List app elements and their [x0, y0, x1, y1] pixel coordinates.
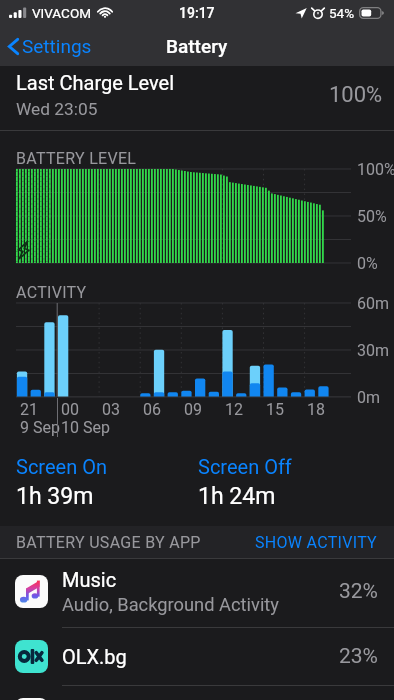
- staticText: 23%: [339, 644, 378, 669]
- other: Location: [295, 7, 307, 19]
- staticText: 0%: [357, 254, 378, 273]
- staticText: 1h 39m: [16, 483, 94, 510]
- button[interactable]: Last Charge Level: [0, 0, 394, 130]
- staticText: 09: [184, 400, 202, 419]
- staticText: OLX.bg: [62, 645, 127, 668]
- staticText: Music: [62, 568, 117, 591]
- staticText: Settings: [22, 35, 92, 57]
- staticText: 30m: [357, 341, 390, 360]
- staticText: 06: [143, 400, 161, 419]
- button[interactable]: Settings: [0, 26, 100, 66]
- staticText: 15: [266, 400, 284, 419]
- staticText: Wed 23:05: [16, 99, 98, 119]
- staticText: 10 Sep: [61, 418, 110, 437]
- staticText: 03: [102, 400, 120, 419]
- staticText: 100%: [357, 160, 394, 179]
- staticText: Last Charge Level: [16, 71, 175, 94]
- staticText: BATTERY LEVEL: [16, 149, 137, 168]
- staticText: 9 Sep: [20, 418, 60, 437]
- staticText: 50%: [357, 207, 387, 226]
- button[interactable]: Messenger: [0, 686, 394, 700]
- staticText: 12: [225, 400, 243, 419]
- staticText: Battery: [166, 35, 228, 57]
- staticText: 19:17: [179, 5, 215, 21]
- button[interactable]: Screen On: [16, 455, 107, 510]
- staticText: 21: [20, 400, 38, 419]
- staticText: 54%: [329, 5, 355, 21]
- other: Cellular signal: [9, 8, 27, 19]
- other: Wi-Fi: [97, 7, 113, 19]
- other: Battery 54 percent: [359, 7, 385, 19]
- staticText: BATTERY USAGE BY APP: [16, 533, 201, 552]
- button[interactable]: Screen Off: [198, 455, 292, 510]
- staticText: 60m: [357, 294, 390, 313]
- staticText: 18: [307, 400, 325, 419]
- button[interactable]: SHOW ACTIVITY: [255, 533, 378, 552]
- button[interactable]: OLX.bg: [0, 628, 394, 685]
- staticText: Screen Off: [198, 455, 292, 478]
- staticText: VIVACOM: [32, 5, 91, 21]
- staticText: 00: [61, 400, 79, 419]
- staticText: Audio, Background Activity: [62, 594, 279, 615]
- staticText: ACTIVITY: [16, 283, 87, 302]
- staticText: 32%: [339, 579, 378, 604]
- other: Alarm: [312, 7, 324, 19]
- staticText: 0m: [357, 388, 381, 407]
- staticText: 100%: [329, 82, 383, 108]
- button[interactable]: Music: [0, 556, 394, 627]
- staticText: Screen On: [16, 455, 107, 478]
- staticText: 1h 24m: [198, 483, 276, 510]
